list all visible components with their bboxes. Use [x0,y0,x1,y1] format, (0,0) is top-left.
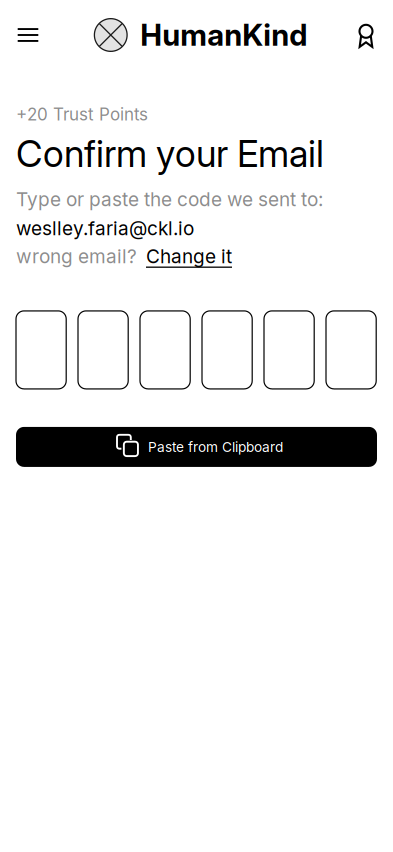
staticText: +20 Trust Points [16,104,148,125]
staticText: Confirm your Email [16,132,324,176]
staticText: Type or paste the code we sent to: [16,188,323,211]
staticText: HumanKind [140,17,307,53]
button[interactable]: Paste from Clipboard [16,427,377,467]
staticText: wrong email? [16,245,137,268]
button[interactable]: Change it [146,245,232,268]
staticText: weslley.faria@ckl.io [16,217,194,240]
staticText: Paste from Clipboard [148,439,283,455]
staticText: Change it [146,245,232,268]
button[interactable]: Menu [6,13,50,57]
button[interactable]: Trust points [344,13,388,57]
